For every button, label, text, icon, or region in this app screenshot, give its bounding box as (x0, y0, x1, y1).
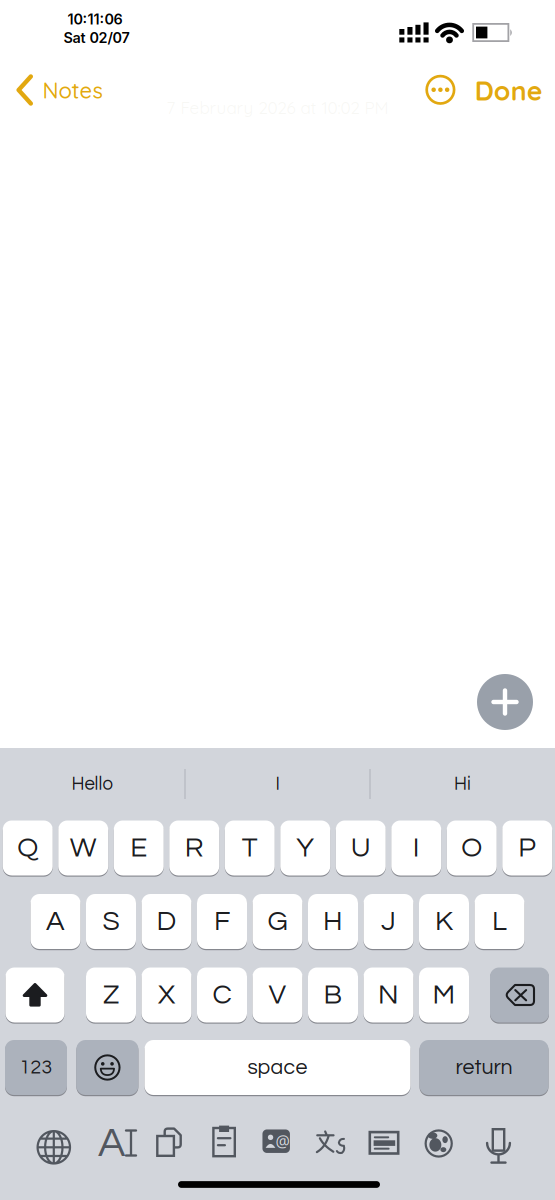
staticText: K (435, 907, 453, 936)
button[interactable]: P (502, 820, 552, 875)
staticText: Done (475, 74, 543, 107)
staticText: F (214, 907, 230, 936)
staticText: Sat 02/07 (63, 29, 129, 46)
staticText: S (102, 907, 119, 936)
staticText: C (212, 981, 231, 1009)
button[interactable] (425, 75, 455, 105)
button[interactable]: V (252, 967, 302, 1022)
button[interactable] (316, 1130, 346, 1154)
button[interactable] (212, 1126, 236, 1158)
button[interactable]: Hi (377, 761, 547, 807)
staticText: M (432, 981, 455, 1009)
staticText: A (46, 907, 65, 936)
button[interactable]: C (197, 967, 247, 1022)
button[interactable]: N (363, 967, 413, 1022)
staticText: I (275, 774, 279, 794)
button[interactable] (368, 1131, 400, 1155)
button[interactable]: E (114, 820, 164, 875)
staticText: return (455, 1056, 512, 1078)
staticText: O (461, 834, 482, 862)
button[interactable]: Notes (12, 72, 107, 108)
staticText: Hello (71, 774, 113, 794)
button[interactable]: M (419, 967, 469, 1022)
staticText: 123 (19, 1057, 52, 1077)
button[interactable]: D (141, 894, 191, 949)
button[interactable] (490, 967, 549, 1022)
staticText: V (268, 981, 286, 1009)
button[interactable]: J (363, 894, 413, 949)
button[interactable] (477, 674, 533, 730)
button[interactable]: S (86, 894, 136, 949)
staticText: H (323, 907, 343, 936)
button[interactable]: Y (280, 820, 330, 875)
staticText: T (242, 834, 258, 862)
button[interactable]: I (192, 761, 362, 807)
staticText: A (98, 1122, 125, 1165)
button[interactable]: G (252, 894, 302, 949)
button[interactable] (36, 1129, 72, 1165)
button[interactable]: L (474, 894, 524, 949)
staticText: B (323, 981, 342, 1009)
button[interactable]: Done (475, 74, 543, 107)
staticText: J (381, 907, 396, 936)
button[interactable]: @ (262, 1129, 290, 1153)
button[interactable]: O (447, 820, 497, 875)
staticText: space (247, 1056, 307, 1078)
button[interactable]: W (58, 820, 108, 875)
staticText: Q (17, 834, 38, 862)
button[interactable]: I (391, 820, 441, 875)
staticText: X (158, 981, 175, 1009)
staticText: D (156, 907, 176, 936)
staticText: U (351, 834, 371, 862)
staticText: E (130, 834, 147, 862)
button[interactable]: 123 (5, 1040, 67, 1095)
staticText: Y (296, 834, 314, 862)
button[interactable] (5, 967, 64, 1022)
button[interactable]: T (225, 820, 275, 875)
staticText: L (492, 907, 507, 936)
staticText: Hi (454, 774, 471, 794)
staticText: G (267, 907, 287, 936)
staticText: W (70, 834, 97, 862)
button[interactable]: F (197, 894, 247, 949)
button[interactable] (424, 1129, 453, 1158)
button[interactable] (76, 1040, 138, 1095)
button[interactable]: Z (86, 967, 136, 1022)
button[interactable]: Hello (7, 761, 177, 807)
staticText: I (413, 834, 420, 862)
button[interactable]: U (336, 820, 386, 875)
staticText: Z (103, 981, 119, 1009)
staticText: @ (275, 1130, 289, 1152)
button[interactable]: A (99, 1121, 141, 1165)
button[interactable]: A (30, 894, 80, 949)
button[interactable] (472, 1128, 525, 1164)
button[interactable]: Q (3, 820, 53, 875)
staticText: R (185, 834, 204, 862)
button[interactable]: space (144, 1040, 410, 1095)
staticText: 10:11:06 (68, 10, 123, 28)
staticText: P (518, 834, 536, 862)
staticText: N (378, 981, 399, 1009)
button[interactable]: R (169, 820, 219, 875)
staticText: Notes (42, 76, 102, 104)
button[interactable]: return (419, 1040, 548, 1095)
button[interactable]: H (308, 894, 358, 949)
button[interactable]: B (308, 967, 358, 1022)
button[interactable] (156, 1125, 181, 1159)
button[interactable]: K (419, 894, 469, 949)
button[interactable]: X (141, 967, 191, 1022)
